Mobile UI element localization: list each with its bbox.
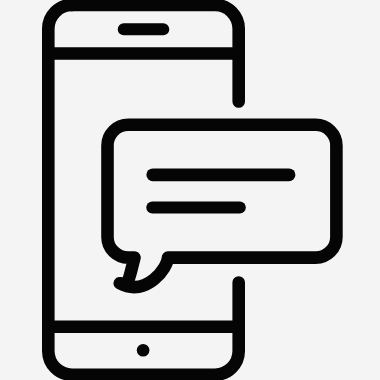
- button[interactable]: Smartphone chat message: [0, 0, 380, 380]
